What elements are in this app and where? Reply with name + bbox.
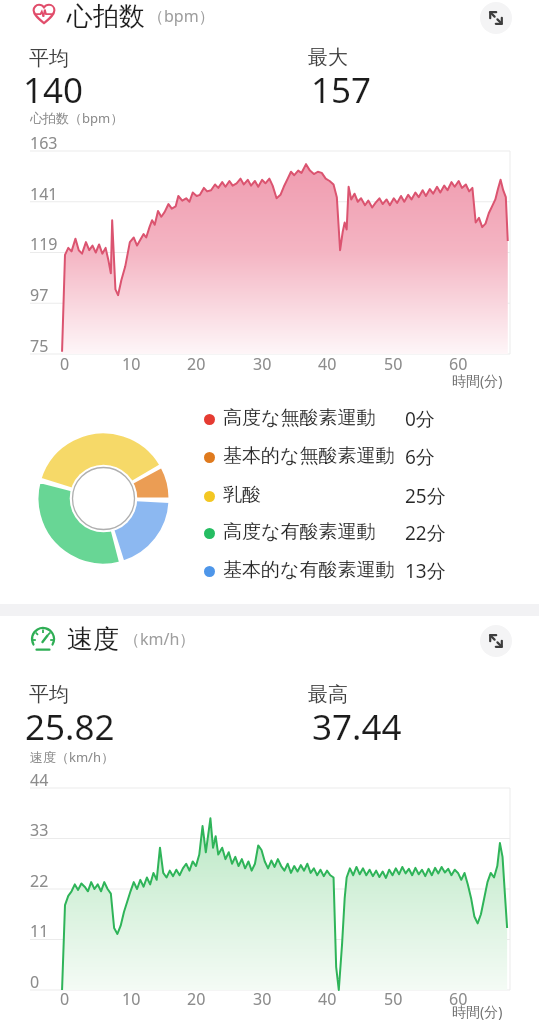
staticText: 速度（km/h）	[30, 748, 114, 766]
staticText: 10	[122, 353, 141, 375]
staticText: 97	[30, 284, 49, 306]
staticText: 10	[122, 988, 141, 1010]
staticText: 60	[449, 988, 468, 1010]
staticText: 時間(分)	[452, 371, 503, 390]
button[interactable]	[0, 616, 539, 1024]
staticText: 20	[187, 353, 206, 375]
staticText: 時間(分)	[452, 1002, 503, 1021]
button[interactable]: 高度な無酸素運動	[0, 403, 539, 435]
staticText: （km/h）	[124, 628, 196, 650]
staticText: 60	[449, 353, 468, 375]
staticText: 30	[253, 353, 272, 375]
staticText: 平均	[29, 682, 69, 707]
button[interactable]: 高度な有酸素運動	[0, 517, 539, 549]
staticText: 40	[318, 988, 337, 1010]
button[interactable]	[480, 2, 512, 34]
staticText: 40	[318, 353, 337, 375]
staticText: 0	[60, 353, 70, 375]
staticText: 25分	[405, 483, 446, 509]
staticText: 心拍数	[67, 0, 145, 33]
staticText: 最高	[308, 682, 348, 707]
button[interactable]: 基本的な無酸素運動	[0, 441, 539, 473]
staticText: 0	[60, 988, 70, 1010]
staticText: 速度	[67, 623, 119, 656]
staticText: 44	[30, 769, 49, 791]
button[interactable]	[480, 625, 512, 657]
staticText: 乳酸	[223, 483, 261, 507]
staticText: （bpm）	[148, 5, 215, 27]
staticText: 心拍数（bpm）	[30, 109, 124, 127]
staticText: 37.44	[312, 703, 402, 751]
staticText: 22	[30, 870, 49, 892]
staticText: 25.82	[25, 703, 115, 751]
staticText: 11	[30, 920, 49, 942]
staticText: 0分	[405, 406, 435, 432]
staticText: 119	[30, 233, 58, 255]
staticText: 140	[23, 66, 84, 114]
staticText: 33	[30, 819, 49, 841]
staticText: 基本的な無酸素運動	[223, 444, 395, 468]
staticText: 平均	[29, 46, 69, 71]
button[interactable]: 基本的な有酸素運動	[0, 555, 539, 587]
staticText: 75	[30, 335, 49, 357]
staticText: 141	[30, 183, 58, 205]
button[interactable]	[0, 0, 539, 604]
staticText: 最大	[308, 45, 348, 70]
staticText: 30	[253, 988, 272, 1010]
staticText: 13分	[405, 558, 446, 584]
staticText: 0	[30, 971, 40, 993]
staticText: 基本的な有酸素運動	[223, 558, 395, 582]
staticText: 50	[384, 353, 403, 375]
staticText: 163	[30, 132, 58, 154]
staticText: 22分	[405, 520, 446, 546]
staticText: 50	[384, 988, 403, 1010]
staticText: 高度な無酸素運動	[223, 406, 376, 430]
staticText: 20	[187, 988, 206, 1010]
staticText: 6分	[405, 444, 435, 470]
staticText: 高度な有酸素運動	[223, 520, 376, 544]
staticText: 157	[311, 66, 372, 114]
button[interactable]: 乳酸	[0, 480, 539, 512]
